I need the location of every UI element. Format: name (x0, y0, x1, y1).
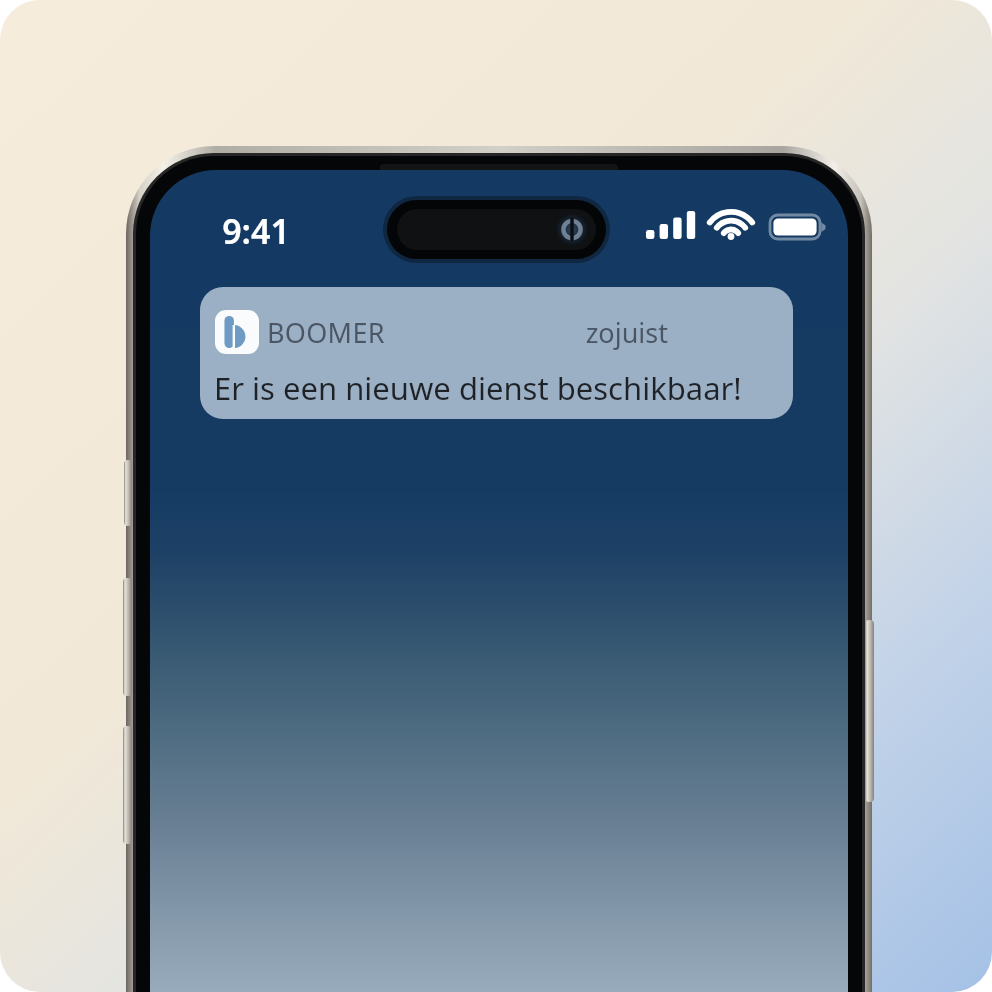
staticText: 9:41 (222, 208, 290, 254)
staticText: zojuist (585, 314, 668, 351)
staticText: Er is een nieuwe dienst beschikbaar! (214, 367, 742, 409)
staticText: BOOMER (267, 314, 385, 351)
other: Signal, Wi-Fi and battery status (646, 209, 822, 243)
button[interactable]: BOOMER (200, 287, 793, 419)
